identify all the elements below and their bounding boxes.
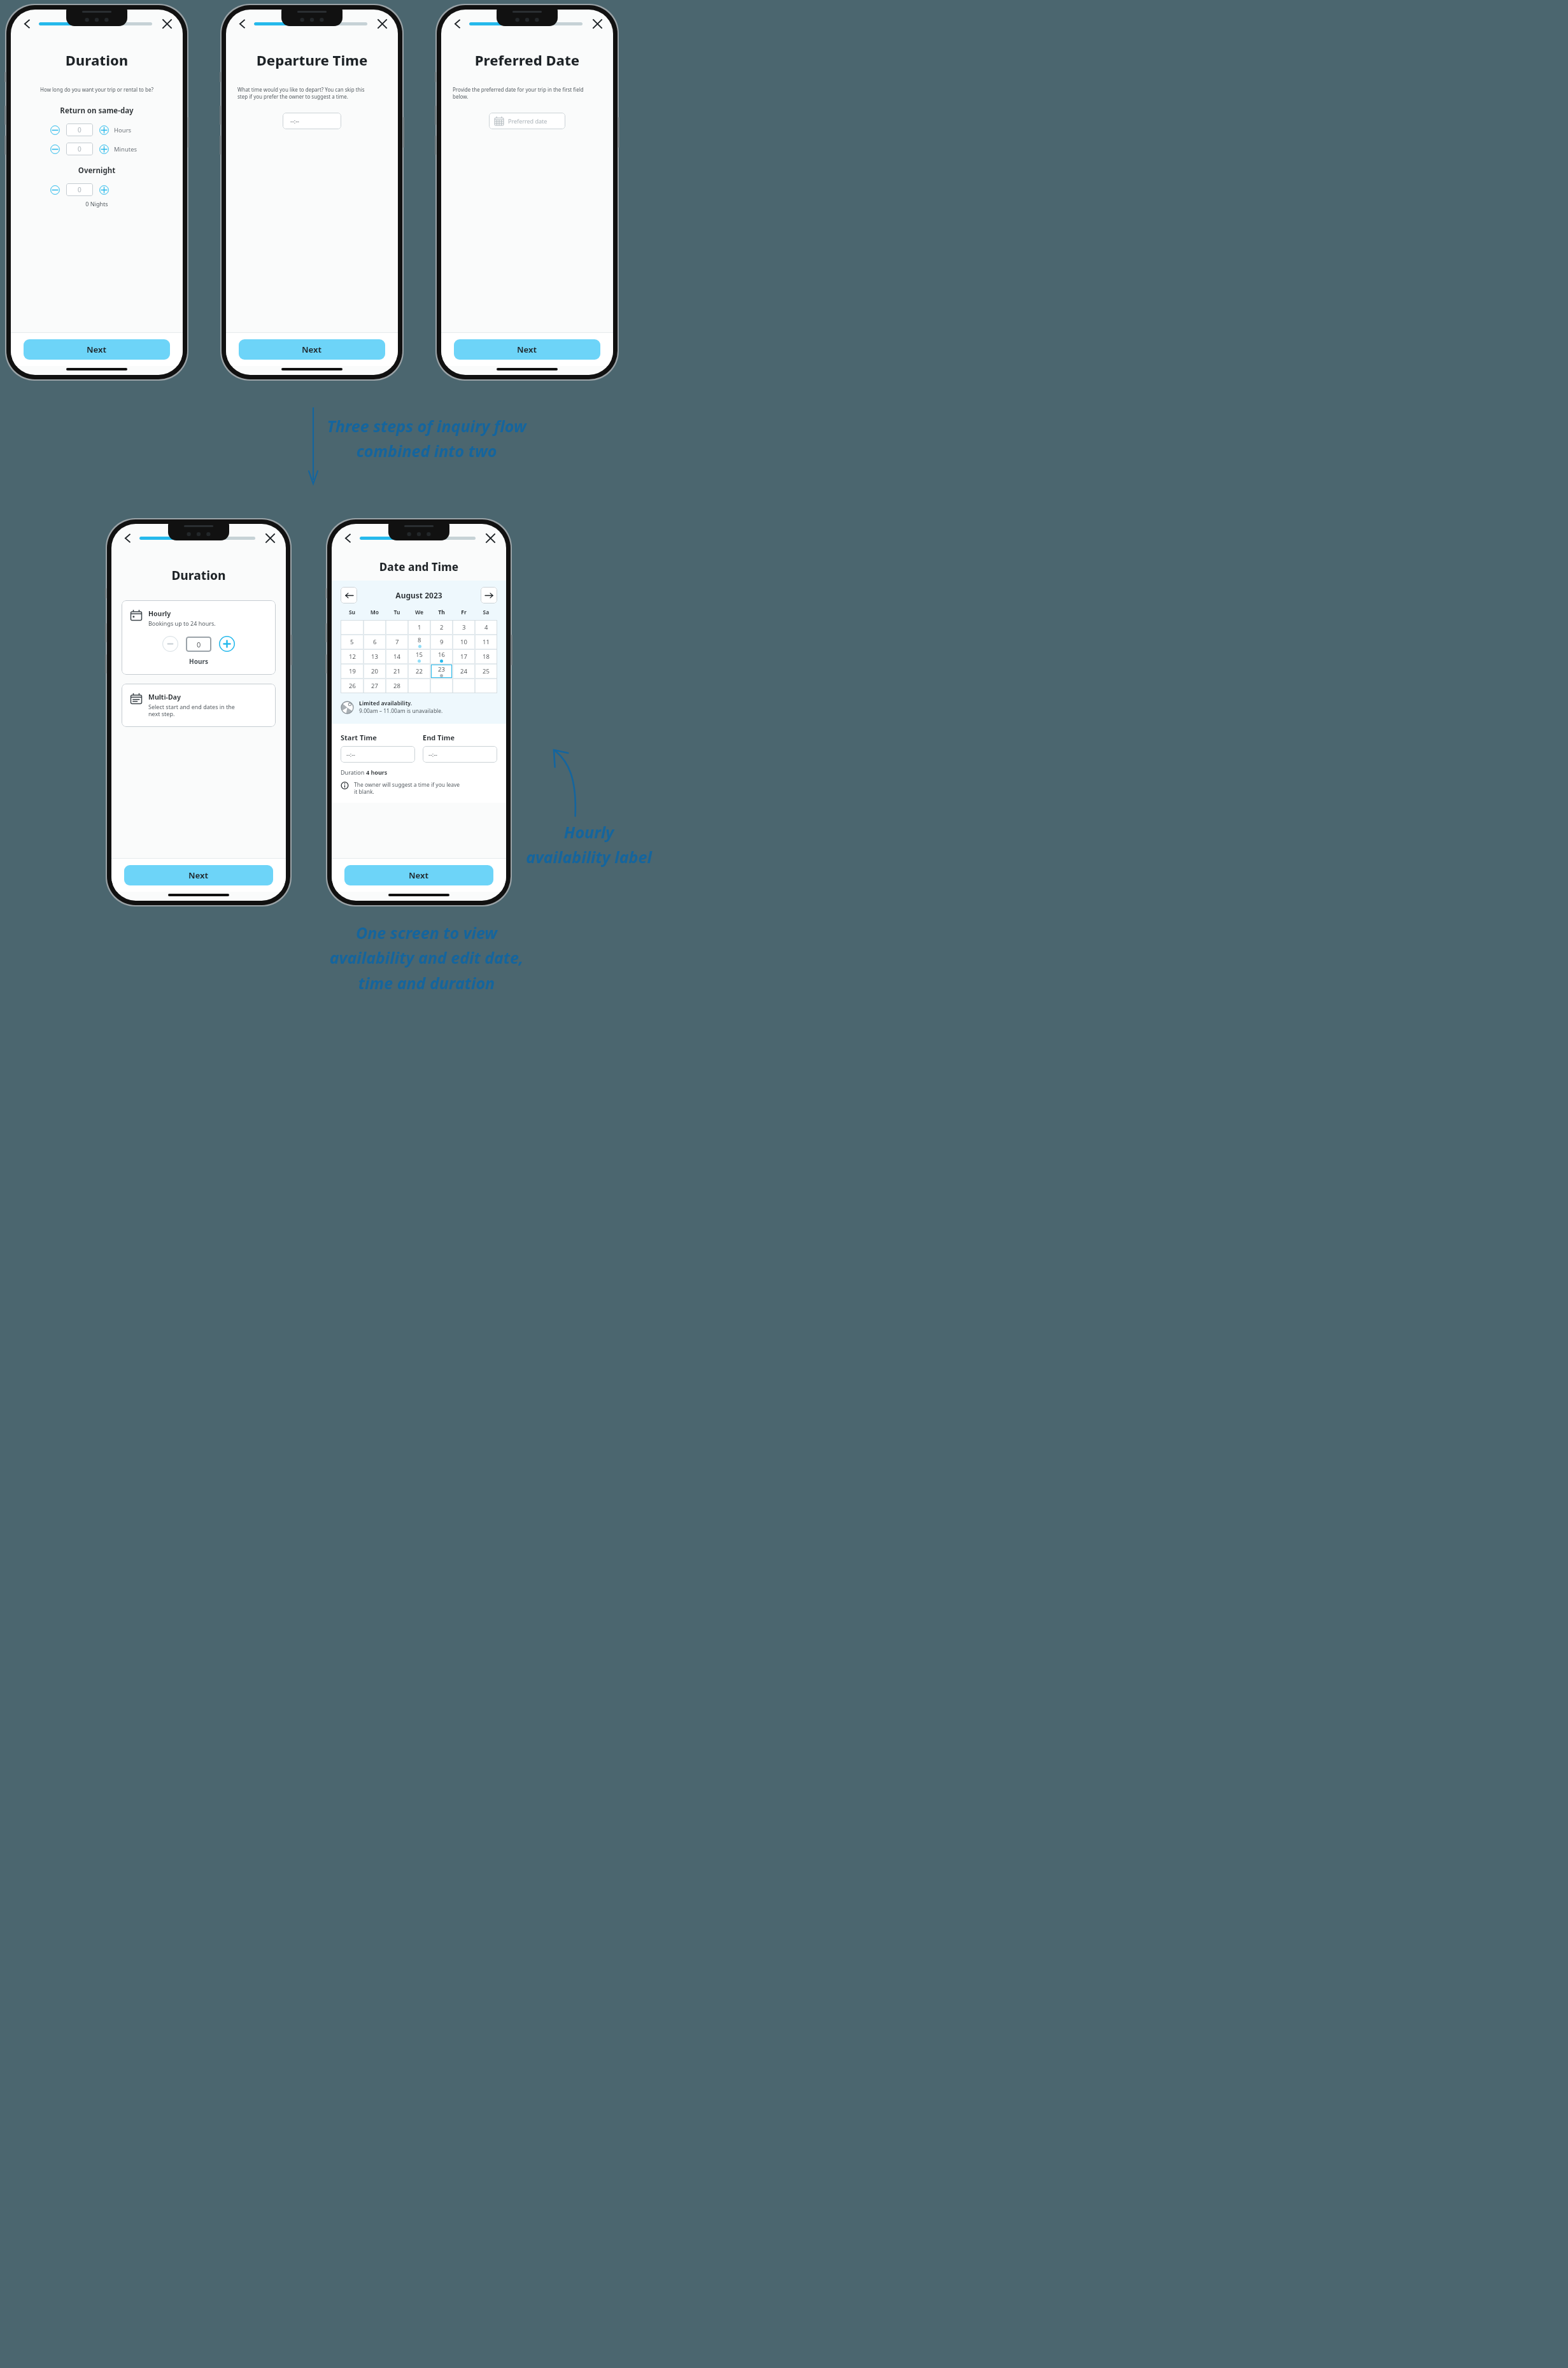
button[interactable]: Back bbox=[119, 530, 136, 546]
button[interactable]: 12 bbox=[341, 649, 364, 664]
button[interactable]: 23 bbox=[430, 664, 453, 679]
button[interactable]: 14 bbox=[386, 649, 408, 664]
button[interactable]: Back bbox=[339, 530, 356, 546]
staticText: 19 bbox=[349, 667, 356, 675]
button[interactable]: 4 bbox=[475, 620, 497, 635]
button[interactable]: 15 bbox=[408, 649, 430, 664]
button[interactable]: 11 bbox=[475, 635, 497, 649]
staticText: Th bbox=[430, 609, 453, 616]
button[interactable]: Back bbox=[234, 15, 250, 32]
button[interactable]: Increase bbox=[99, 144, 109, 154]
button[interactable]: 27 bbox=[364, 679, 386, 693]
button[interactable]: 26 bbox=[341, 679, 364, 693]
staticText: 18 bbox=[483, 652, 490, 661]
button bbox=[453, 679, 475, 693]
button[interactable]: Next bbox=[344, 865, 493, 885]
button[interactable]: Back bbox=[18, 15, 35, 32]
button[interactable]: Close bbox=[374, 15, 390, 32]
button bbox=[341, 620, 364, 635]
staticText: 7 bbox=[395, 638, 399, 646]
button[interactable]: 10 bbox=[453, 635, 475, 649]
button[interactable]: Increase bbox=[99, 185, 109, 195]
button[interactable]: Next bbox=[24, 339, 170, 360]
button[interactable]: Next bbox=[239, 339, 385, 360]
button[interactable]: 0 bbox=[186, 637, 211, 652]
button[interactable]: Multi-Day bbox=[122, 684, 276, 727]
button[interactable]: Close bbox=[482, 530, 498, 546]
button[interactable]: 25 bbox=[475, 664, 497, 679]
button[interactable]: Hourly bbox=[122, 600, 276, 675]
button[interactable]: 21 bbox=[386, 664, 408, 679]
button[interactable]: 17 bbox=[453, 649, 475, 664]
button[interactable]: 3 bbox=[453, 620, 475, 635]
staticText: 9.00am – 11.00am is unavailable. bbox=[359, 707, 443, 715]
button[interactable]: Decrease hours bbox=[162, 636, 178, 652]
button[interactable]: 6 bbox=[364, 635, 386, 649]
staticText: 0 bbox=[78, 144, 81, 153]
button[interactable]: Next bbox=[454, 339, 600, 360]
button[interactable]: Preferred date bbox=[489, 113, 565, 129]
staticText: Date and Time bbox=[332, 560, 506, 574]
staticText: Next bbox=[188, 870, 209, 881]
staticText: 14 bbox=[393, 652, 400, 661]
staticText: Start Time bbox=[341, 733, 415, 742]
button[interactable]: 0 bbox=[66, 183, 93, 196]
staticText: 21 bbox=[393, 667, 400, 675]
button[interactable]: 16 bbox=[430, 649, 453, 664]
button[interactable]: Previous month bbox=[341, 587, 357, 603]
button[interactable]: 5 bbox=[341, 635, 364, 649]
staticText: 8 bbox=[418, 636, 421, 644]
button[interactable]: 2 bbox=[430, 620, 453, 635]
button[interactable]: Next bbox=[124, 865, 273, 885]
button bbox=[364, 620, 386, 635]
staticText: Minutes bbox=[114, 145, 138, 153]
button[interactable]: Decrease bbox=[50, 125, 60, 135]
staticText: 5 bbox=[350, 638, 354, 646]
staticText: 13 bbox=[371, 652, 378, 661]
button[interactable]: 18 bbox=[475, 649, 497, 664]
button[interactable]: --:-- bbox=[423, 746, 497, 763]
staticText: 22 bbox=[416, 667, 423, 675]
staticText: --:-- bbox=[428, 751, 438, 758]
button[interactable]: 7 bbox=[386, 635, 408, 649]
staticText: What time would you like to depart? You … bbox=[237, 86, 386, 100]
button[interactable]: Back bbox=[449, 15, 465, 32]
button[interactable]: 0 bbox=[66, 143, 93, 155]
button[interactable]: Decrease bbox=[50, 144, 60, 154]
button[interactable]: Increase hours bbox=[219, 636, 235, 652]
button[interactable]: 22 bbox=[408, 664, 430, 679]
button[interactable]: 9 bbox=[430, 635, 453, 649]
button[interactable]: Increase bbox=[99, 125, 109, 135]
staticText: 0 bbox=[197, 640, 201, 649]
button[interactable]: Close bbox=[262, 530, 278, 546]
button[interactable]: 20 bbox=[364, 664, 386, 679]
button[interactable]: 13 bbox=[364, 649, 386, 664]
button[interactable]: 28 bbox=[386, 679, 408, 693]
button[interactable]: --:-- bbox=[341, 746, 415, 763]
button[interactable]: 19 bbox=[341, 664, 364, 679]
button[interactable]: Close bbox=[589, 15, 605, 32]
button[interactable]: 1 bbox=[408, 620, 430, 635]
staticText: 2 bbox=[440, 623, 444, 631]
staticText: 20 bbox=[371, 667, 378, 675]
button[interactable]: Decrease bbox=[50, 185, 60, 195]
staticText: 0 Nights bbox=[11, 200, 183, 208]
staticText: 4 hours bbox=[366, 768, 388, 776]
staticText: 23 bbox=[438, 665, 445, 673]
button[interactable]: 24 bbox=[453, 664, 475, 679]
button bbox=[430, 679, 453, 693]
staticText: Duration bbox=[111, 567, 286, 584]
staticText: 11 bbox=[483, 638, 490, 646]
button[interactable]: Close bbox=[159, 15, 175, 32]
button[interactable]: Next month bbox=[481, 587, 497, 603]
button[interactable]: 8 bbox=[408, 635, 430, 649]
staticText: Provide the preferred date for your trip… bbox=[453, 86, 602, 100]
staticText: Next bbox=[87, 344, 107, 355]
button[interactable]: --:-- bbox=[283, 113, 341, 129]
staticText: --:-- bbox=[346, 751, 356, 758]
staticText: Tu bbox=[386, 609, 408, 616]
staticText: 4 bbox=[484, 623, 488, 631]
staticText: Select start and end dates in the next s… bbox=[148, 703, 235, 718]
staticText: 16 bbox=[438, 651, 445, 659]
button[interactable]: 0 bbox=[66, 123, 93, 136]
